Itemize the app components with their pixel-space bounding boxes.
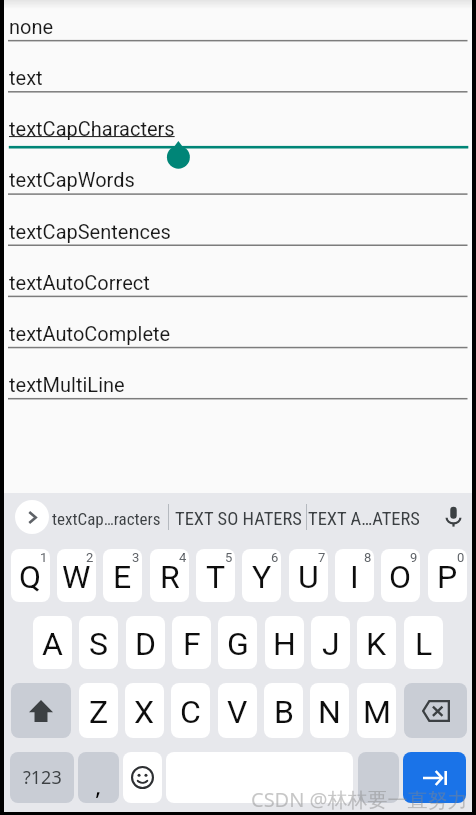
button[interactable]: Q: [11, 549, 50, 602]
staticText: Y: [252, 558, 272, 596]
staticText: textCapCharacters: [9, 117, 175, 140]
button[interactable]: Y: [242, 549, 281, 602]
staticText: Q: [19, 558, 42, 596]
button[interactable]: H: [265, 616, 304, 669]
staticText: I: [350, 558, 359, 596]
staticText: B: [274, 693, 294, 731]
staticText: textAutoComplete: [9, 322, 171, 345]
button[interactable]: O: [381, 549, 420, 602]
staticText: M: [363, 693, 391, 731]
button[interactable]: P: [428, 549, 467, 602]
button[interactable]: Space: [166, 752, 353, 803]
button[interactable]: Period: [358, 752, 399, 803]
button[interactable]: textAutoCorrect: [4, 250, 472, 301]
staticText: 6: [271, 550, 279, 565]
staticText: H: [273, 625, 296, 663]
staticText: TEXT A…ATERS: [308, 508, 420, 530]
staticText: N: [318, 693, 341, 731]
staticText: P: [437, 558, 458, 596]
button[interactable]: V: [218, 683, 257, 738]
button[interactable]: Emoji: [123, 752, 162, 803]
staticText: O: [389, 558, 412, 596]
button[interactable]: J: [311, 616, 350, 669]
button[interactable]: textMultiLine: [4, 352, 472, 403]
staticText: A: [42, 625, 63, 663]
button[interactable]: B: [264, 683, 303, 738]
staticText: textCapWords: [9, 168, 135, 191]
button[interactable]: textCapSentences: [4, 199, 472, 250]
button[interactable]: D: [126, 616, 165, 669]
staticText: 4: [179, 550, 187, 565]
staticText: V: [227, 693, 248, 731]
button[interactable]: Enter: [403, 752, 466, 803]
button[interactable]: text: [4, 45, 472, 96]
staticText: E: [113, 558, 132, 596]
button[interactable]: X: [125, 683, 164, 738]
button[interactable]: Backspace: [404, 683, 467, 738]
button[interactable]: G: [218, 616, 257, 669]
staticText: 1: [40, 550, 48, 565]
staticText: D: [135, 625, 156, 663]
button[interactable]: textCap…racters: [46, 493, 166, 545]
staticText: Z: [89, 693, 109, 731]
staticText: F: [183, 625, 201, 663]
button[interactable]: TEXT A…ATERS: [308, 493, 420, 545]
button[interactable]: T: [196, 549, 235, 602]
staticText: K: [366, 625, 387, 663]
staticText: 3: [132, 550, 140, 565]
button[interactable]: I: [335, 549, 374, 602]
button[interactable]: textCapWords: [4, 147, 472, 198]
staticText: textCapSentences: [9, 220, 171, 243]
staticText: S: [89, 625, 108, 663]
staticText: J: [322, 625, 340, 663]
button[interactable]: U: [289, 549, 328, 602]
staticText: textMultiLine: [9, 373, 125, 396]
staticText: TEXT SO HATERS: [175, 508, 300, 530]
button[interactable]: L: [404, 616, 443, 669]
button[interactable]: TEXT SO HATERS: [175, 493, 300, 545]
staticText: 7: [318, 550, 326, 565]
staticText: ,: [95, 769, 102, 802]
button[interactable]: W: [57, 549, 96, 602]
staticText: W: [62, 558, 91, 596]
button[interactable]: Comma: [78, 752, 119, 803]
button[interactable]: none: [4, 0, 472, 45]
staticText: ?123: [23, 765, 62, 790]
button[interactable]: C: [171, 683, 210, 738]
button[interactable]: E: [103, 549, 142, 602]
button[interactable]: K: [357, 616, 396, 669]
staticText: L: [415, 625, 433, 663]
button[interactable]: M: [357, 683, 396, 738]
staticText: 8: [364, 550, 372, 565]
staticText: textCap…racters: [52, 509, 161, 529]
staticText: 5: [225, 550, 233, 565]
staticText: text: [9, 66, 43, 89]
staticText: 9: [410, 550, 418, 565]
button[interactable]: Voice input: [436, 499, 470, 533]
staticText: R: [160, 558, 180, 596]
button[interactable]: N: [310, 683, 349, 738]
staticText: X: [134, 693, 155, 731]
button[interactable]: A: [33, 616, 72, 669]
staticText: C: [180, 693, 201, 731]
staticText: textAutoCorrect: [9, 271, 150, 294]
button[interactable]: Z: [79, 683, 118, 738]
staticText: U: [298, 558, 319, 596]
button[interactable]: F: [172, 616, 211, 669]
button[interactable]: R: [150, 549, 189, 602]
button[interactable]: ?123: [10, 752, 74, 803]
staticText: CSDN @林林要一直努力: [251, 786, 468, 813]
button[interactable]: S: [79, 616, 118, 669]
button[interactable]: textAutoComplete: [4, 301, 472, 352]
staticText: T: [206, 558, 226, 596]
button[interactable]: textCapCharacters: [4, 96, 472, 147]
staticText: none: [9, 15, 54, 38]
staticText: G: [227, 625, 249, 663]
button[interactable]: Shift: [11, 683, 71, 738]
button[interactable]: More suggestions: [15, 500, 49, 534]
staticText: 2: [86, 550, 94, 565]
staticText: 0: [457, 550, 465, 565]
